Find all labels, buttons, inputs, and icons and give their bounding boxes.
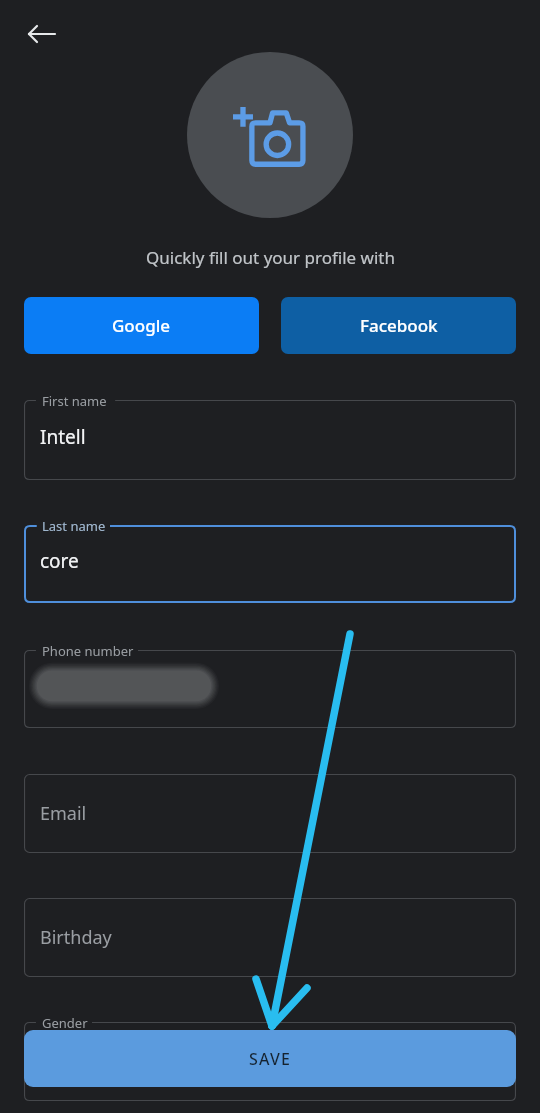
button[interactable]: SAVE — [24, 1030, 516, 1087]
staticText: SAVE — [249, 1048, 292, 1070]
staticText: Gender — [42, 1014, 88, 1032]
staticText: Phone number — [42, 642, 134, 660]
button[interactable]: First name — [24, 400, 516, 480]
staticText: Facebook — [360, 314, 438, 337]
button[interactable]: Birthday — [24, 898, 516, 977]
staticText: Last name — [42, 517, 106, 535]
button[interactable]: Add photo — [187, 52, 353, 218]
button[interactable]: Last name — [24, 525, 516, 603]
staticText: Birthday — [40, 925, 112, 950]
button[interactable]: Google — [24, 297, 259, 354]
staticText: core — [40, 548, 79, 574]
button[interactable]: Back — [18, 10, 66, 58]
button[interactable]: Email — [24, 774, 516, 853]
staticText: First name — [42, 392, 107, 410]
staticText: Intell — [40, 424, 86, 450]
button[interactable]: Facebook — [281, 297, 516, 354]
staticText: Email — [40, 801, 87, 826]
button[interactable]: Gender — [24, 1022, 516, 1101]
button[interactable]: Phone number — [24, 650, 516, 728]
staticText: Quickly fill out your profile with — [146, 246, 395, 269]
staticText: Google — [112, 314, 171, 337]
